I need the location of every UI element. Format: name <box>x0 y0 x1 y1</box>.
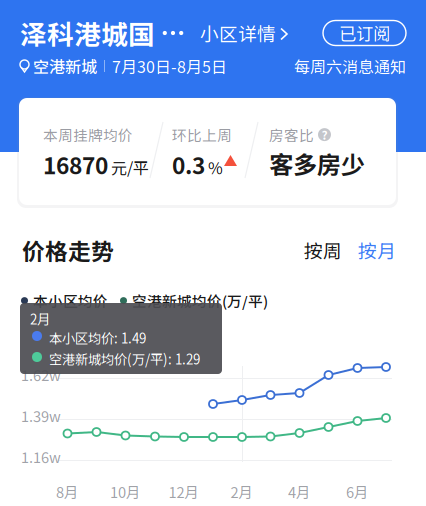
staticText: ? <box>321 126 327 143</box>
staticText: 10月 <box>110 481 141 502</box>
staticText: 0.3 <box>172 148 205 181</box>
button[interactable]: 已订阅 <box>323 20 406 45</box>
staticText: 按周 <box>304 236 342 263</box>
staticText: 4月 <box>288 481 311 502</box>
staticText: 空港新城均价(万/平) <box>132 290 268 311</box>
staticText: 8月 <box>56 481 79 502</box>
staticText: 2月 <box>30 309 50 328</box>
staticText: 6月 <box>346 481 369 502</box>
staticText: % <box>208 156 223 179</box>
staticText: 本周挂牌均价 <box>43 124 133 145</box>
staticText: 本小区均价 <box>33 290 108 311</box>
staticText: 本小区均价: 1.49 <box>49 328 146 347</box>
staticText: 泽科港城国 <box>20 14 155 52</box>
staticText: 房客比 <box>269 124 314 145</box>
staticText: 客多房少 <box>269 146 365 181</box>
staticText: 环比上周 <box>172 124 232 145</box>
staticText: 2月 <box>230 481 253 502</box>
staticText: 价格走势 <box>22 234 114 266</box>
staticText: 16870 <box>43 148 108 181</box>
staticText: 1.16w <box>21 446 61 467</box>
staticText: 7月30日-8月5日 <box>112 54 227 78</box>
staticText: 已订阅 <box>339 20 390 46</box>
staticText: 空港新城 <box>33 54 97 78</box>
button[interactable]: 按周 <box>296 232 350 267</box>
button[interactable]: 按月 <box>350 232 404 267</box>
button[interactable]: 小区详情 <box>186 13 287 52</box>
staticText: 小区详情 <box>200 19 276 46</box>
staticText: 每周六消息通知 <box>294 54 406 78</box>
staticText: 12月 <box>168 481 199 502</box>
staticText: 元/平 <box>111 156 149 179</box>
staticText: 空港新城均价(万/平): 1.29 <box>49 349 200 368</box>
staticText: 按月 <box>358 236 396 263</box>
staticText: 1.39w <box>21 405 61 426</box>
staticText: 1.62w <box>21 364 61 385</box>
